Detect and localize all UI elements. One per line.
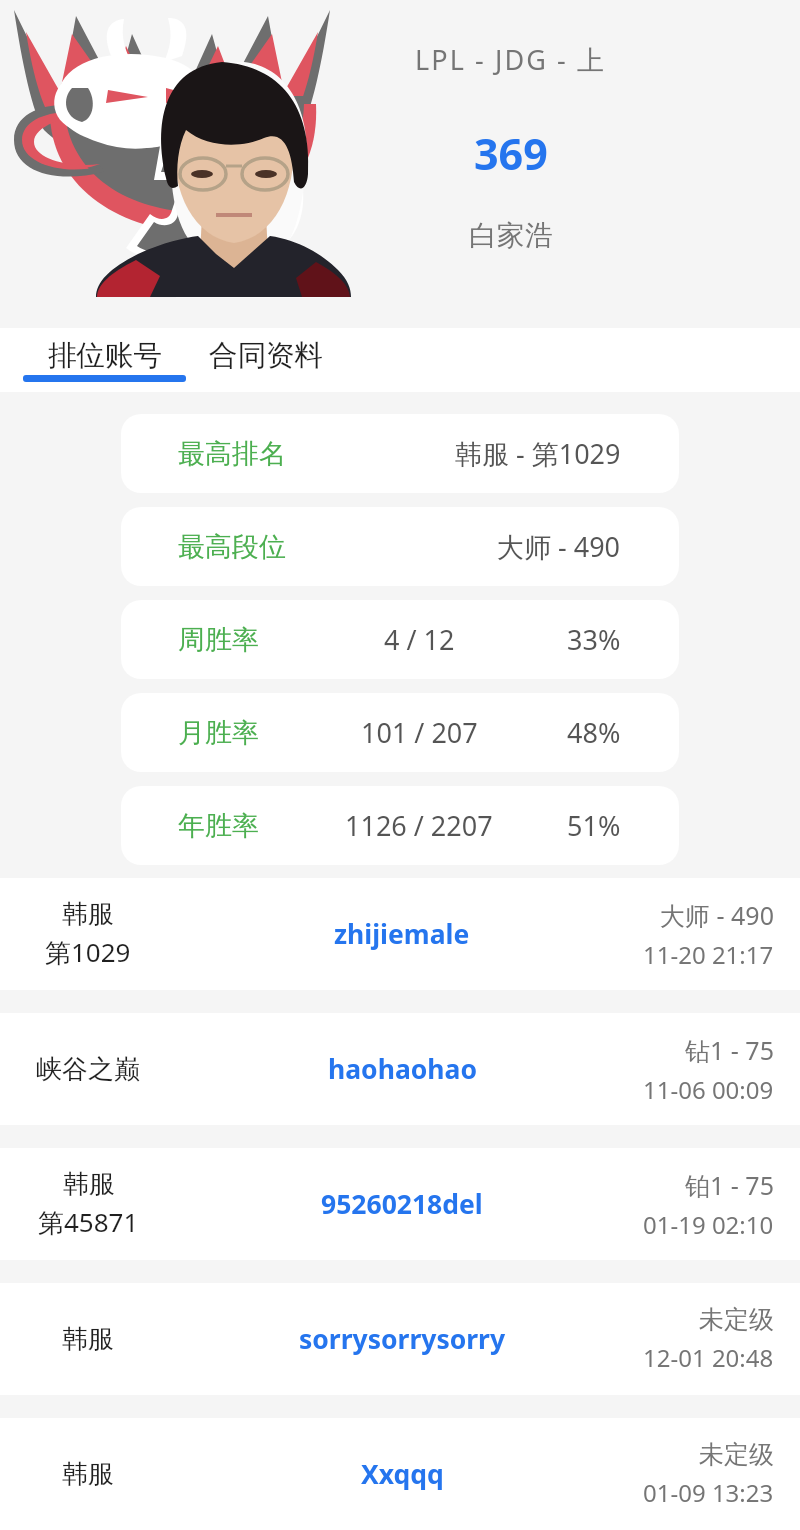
button[interactable]: 韩服 [0, 1418, 800, 1530]
staticText: 月胜率 [178, 716, 259, 750]
staticText: 韩服 [63, 1168, 115, 1201]
staticText: 12-01 20:48 [643, 1341, 774, 1374]
staticText: 排位账号 [48, 338, 162, 374]
button[interactable]: 合同资料 [207, 324, 325, 388]
button[interactable]: 峡谷之巅 [0, 1013, 800, 1125]
staticText: 1126 / 2207 [345, 807, 493, 844]
staticText: sorrysorrysorry [299, 1321, 506, 1357]
staticText: 第1029 [45, 934, 131, 970]
staticText: zhijiemale [334, 916, 470, 952]
button[interactable]: 排位账号 [23, 324, 186, 388]
button[interactable]: 周胜率 [121, 600, 679, 679]
button[interactable]: 最高排名 [121, 414, 679, 493]
staticText: 51% [567, 807, 621, 844]
staticText: 48% [567, 714, 621, 751]
staticText: 11-06 00:09 [643, 1073, 774, 1106]
staticText: haohaohao [328, 1051, 477, 1087]
staticText: 年胜率 [178, 809, 259, 843]
staticText: 白家浩 [469, 218, 553, 253]
staticText: LPL - JDG - 上 [415, 41, 607, 78]
staticText: 韩服 [62, 1323, 114, 1356]
staticText: 铂1 - 75 [685, 1168, 774, 1202]
staticText: 合同资料 [209, 338, 323, 374]
staticText: 33% [567, 621, 621, 658]
staticText: 未定级 [699, 1439, 774, 1470]
staticText: Xxqqq [361, 1456, 444, 1492]
staticText: 最高排名 [178, 437, 286, 471]
staticText: 大师 - 490 [660, 898, 774, 932]
staticText: 未定级 [699, 1304, 774, 1335]
staticText: 369 [474, 124, 548, 183]
button[interactable]: 最高段位 [121, 507, 679, 586]
staticText: 01-19 02:10 [643, 1208, 774, 1241]
button[interactable]: 韩服 [0, 1148, 800, 1260]
staticText: 4 / 12 [384, 621, 455, 658]
staticText: 第45871 [38, 1204, 139, 1240]
staticText: 01-09 13:23 [643, 1476, 774, 1509]
staticText: 11-20 21:17 [643, 938, 774, 971]
button[interactable]: 韩服 [0, 878, 800, 990]
staticText: 最高段位 [178, 530, 286, 564]
staticText: 大师 - 490 [497, 528, 621, 565]
staticText: 峡谷之巅 [36, 1053, 140, 1086]
button[interactable]: 月胜率 [121, 693, 679, 772]
staticText: 韩服 [62, 1458, 114, 1491]
button[interactable]: 韩服 [0, 1283, 800, 1395]
staticText: 韩服 [62, 898, 114, 931]
staticText: 钻1 - 75 [685, 1033, 774, 1067]
staticText: 95260218del [321, 1186, 483, 1222]
button[interactable]: 年胜率 [121, 786, 679, 865]
staticText: 周胜率 [178, 623, 259, 657]
staticText: 101 / 207 [361, 714, 478, 751]
staticText: 韩服 - 第1029 [455, 435, 621, 472]
